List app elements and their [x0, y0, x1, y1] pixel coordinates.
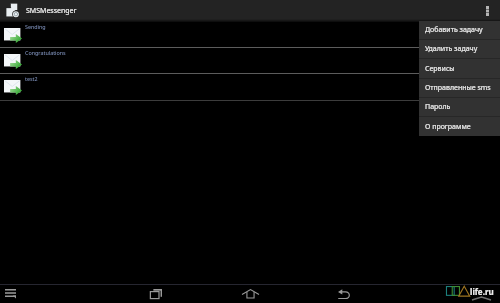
staticText: Удалить задачу — [425, 44, 478, 54]
staticText: Добавить задачу — [425, 25, 483, 35]
button[interactable]: Добавить задачу — [419, 21, 500, 39]
staticText: Отправленные sms — [425, 83, 491, 93]
button[interactable]: Menu — [0, 284, 21, 303]
staticText: test2 — [25, 75, 38, 82]
staticText: Сервисы — [425, 64, 455, 74]
staticText: Congratulations — [25, 49, 66, 56]
staticText: Пароль — [425, 102, 451, 112]
button[interactable]: Сервисы — [419, 59, 500, 78]
button[interactable]: test2 — [0, 74, 500, 101]
button[interactable]: Home — [240, 284, 260, 303]
staticText: Sending — [25, 23, 46, 30]
button[interactable]: Back — [334, 284, 354, 303]
button[interactable]: Sending — [0, 22, 500, 48]
button[interactable]: More options — [475, 0, 500, 22]
button[interactable]: Пароль — [419, 98, 500, 116]
button[interactable]: Удалить задачу — [419, 40, 500, 58]
staticText: SMSMessenger — [26, 6, 77, 16]
staticText: О программе — [425, 122, 471, 132]
button[interactable]: О программе — [419, 117, 500, 136]
button[interactable]: Recent apps — [146, 284, 166, 303]
button[interactable]: Отправленные sms — [419, 79, 500, 97]
button[interactable]: Congratulations — [0, 48, 500, 74]
staticText: life.ru — [470, 286, 494, 297]
